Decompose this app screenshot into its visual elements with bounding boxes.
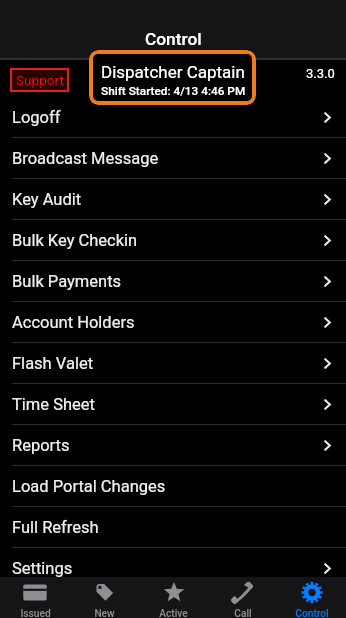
button[interactable]: Issued xyxy=(0,577,70,618)
staticText: Call xyxy=(234,608,252,618)
staticText: Control xyxy=(145,29,202,49)
button[interactable]: Support xyxy=(10,68,69,92)
staticText: 3.3.0 xyxy=(306,66,335,81)
button[interactable]: Reports xyxy=(0,425,346,466)
button[interactable]: Dispatcher Captain xyxy=(89,50,256,105)
button[interactable]: Key Audit xyxy=(0,179,346,220)
staticText: Time Sheet xyxy=(12,395,95,414)
button[interactable]: Control xyxy=(277,577,346,618)
staticText: Settings xyxy=(12,559,73,578)
staticText: Support xyxy=(16,72,64,88)
staticText: Flash Valet xyxy=(12,354,94,373)
staticText: Issued xyxy=(20,608,51,618)
button[interactable]: Full Refresh xyxy=(0,507,346,548)
staticText: Active xyxy=(159,608,188,618)
staticText: Bulk Payments xyxy=(12,272,122,291)
button[interactable]: Settings xyxy=(0,548,346,589)
button[interactable]: Logoff xyxy=(0,97,346,138)
button[interactable]: Load Portal Changes xyxy=(0,466,346,507)
staticText: Key Audit xyxy=(12,190,82,209)
button[interactable]: Active xyxy=(139,577,208,618)
button[interactable]: Call xyxy=(208,577,277,618)
staticText: New xyxy=(94,608,115,618)
staticText: Control xyxy=(295,608,329,618)
staticText: Shift Started: 4/13 4:46 PM xyxy=(101,84,246,98)
staticText: Bulk Key Checkin xyxy=(12,231,138,250)
staticText: Reports xyxy=(12,436,70,455)
staticText: Account Holders xyxy=(12,313,135,332)
button[interactable]: Bulk Key Checkin xyxy=(0,220,346,261)
staticText: Broadcast Message xyxy=(12,149,159,168)
button[interactable]: New xyxy=(70,577,139,618)
staticText: Dispatcher Captain xyxy=(101,62,245,82)
button[interactable]: Time Sheet xyxy=(0,384,346,425)
button[interactable]: Flash Valet xyxy=(0,343,346,384)
button[interactable]: Bulk Payments xyxy=(0,261,346,302)
staticText: Full Refresh xyxy=(12,518,99,537)
button[interactable]: Broadcast Message xyxy=(0,138,346,179)
staticText: Logoff xyxy=(12,108,61,127)
staticText: Load Portal Changes xyxy=(12,477,166,496)
button[interactable]: Account Holders xyxy=(0,302,346,343)
